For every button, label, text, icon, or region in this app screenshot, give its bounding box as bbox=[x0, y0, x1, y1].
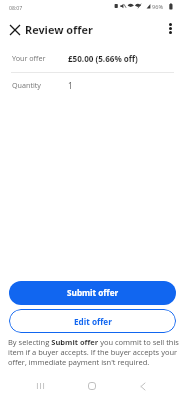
staticText: Review offer bbox=[25, 22, 93, 37]
button[interactable]: Edit offer bbox=[9, 309, 176, 333]
button[interactable]: More options bbox=[160, 18, 181, 39]
staticText: Edit offer bbox=[74, 316, 112, 327]
staticText: 96% bbox=[152, 3, 164, 11]
button[interactable]: Submit offer bbox=[9, 281, 176, 305]
staticText: Submit offer bbox=[67, 287, 119, 298]
staticText: Quantity bbox=[12, 80, 41, 90]
button[interactable]: Home bbox=[80, 374, 104, 398]
staticText: 1 bbox=[68, 80, 73, 91]
staticText: Your offer bbox=[12, 53, 46, 63]
button[interactable]: Back bbox=[131, 374, 155, 398]
button[interactable]: Recent apps bbox=[28, 374, 52, 398]
staticText: 08:07 bbox=[9, 4, 23, 11]
staticText: By selecting Submit offer you commit to … bbox=[8, 337, 180, 367]
staticText: £50.00 (5.66% off) bbox=[68, 53, 138, 64]
button[interactable]: Close bbox=[4, 19, 25, 40]
